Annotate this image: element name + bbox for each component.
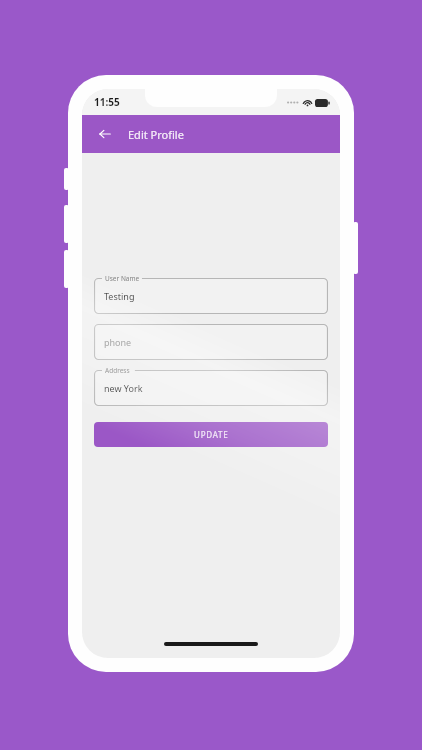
staticText: phone bbox=[104, 336, 132, 348]
staticText: new York bbox=[104, 382, 143, 394]
staticText: User Name bbox=[105, 274, 140, 283]
staticText: Edit Profile bbox=[128, 127, 184, 142]
staticText: Address bbox=[105, 366, 130, 375]
button[interactable]: UPDATE bbox=[94, 422, 328, 447]
button[interactable]: Address bbox=[94, 370, 328, 406]
staticText: UPDATE bbox=[194, 429, 229, 440]
button[interactable]: User Name bbox=[94, 278, 328, 314]
button[interactable]: Back bbox=[90, 119, 120, 149]
button[interactable]: phone bbox=[94, 324, 328, 360]
staticText: 11:55 bbox=[94, 95, 120, 109]
staticText: Testing bbox=[104, 290, 135, 302]
